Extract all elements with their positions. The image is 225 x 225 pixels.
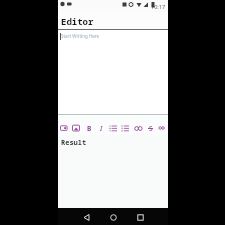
- staticText: Start Writing Here: [61, 33, 100, 39]
- button[interactable]: [133, 123, 143, 133]
- button[interactable]: S: [145, 123, 155, 133]
- button[interactable]: [80, 211, 92, 223]
- button[interactable]: [107, 211, 119, 223]
- staticText: 10:17: [151, 3, 166, 10]
- staticText: Result: [61, 138, 87, 148]
- button[interactable]: Start Writing Here: [58, 30, 168, 114]
- button[interactable]: [71, 123, 81, 133]
- button[interactable]: [59, 123, 69, 133]
- staticText: B: [87, 124, 92, 133]
- staticText: Editor: [61, 15, 94, 27]
- staticText: I: [100, 124, 103, 133]
- button[interactable]: B: [84, 123, 94, 133]
- button[interactable]: [108, 123, 118, 133]
- staticText: S: [149, 124, 153, 133]
- button[interactable]: [134, 211, 146, 223]
- button[interactable]: [120, 123, 130, 133]
- button[interactable]: [157, 123, 167, 133]
- button[interactable]: I: [96, 123, 106, 133]
